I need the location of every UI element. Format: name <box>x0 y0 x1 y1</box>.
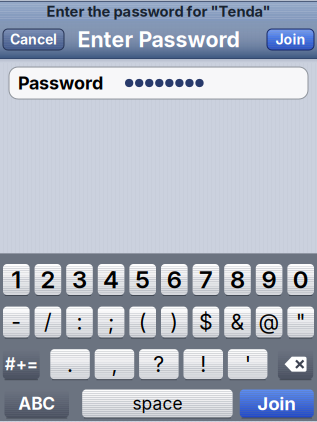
staticText: 4 <box>103 265 119 294</box>
button[interactable]: ? <box>139 349 179 380</box>
staticText: 0 <box>293 265 309 294</box>
staticText: 6 <box>167 265 182 294</box>
button[interactable]: $ <box>193 307 219 339</box>
staticText: 3 <box>72 265 87 294</box>
button[interactable]: ' <box>228 349 267 380</box>
button[interactable]: 2 <box>35 264 61 296</box>
button[interactable]: Password <box>9 67 308 99</box>
button[interactable]: Cancel <box>3 29 64 50</box>
button[interactable]: 5 <box>129 264 156 296</box>
button[interactable]: , <box>95 349 134 380</box>
staticText: ; <box>108 309 114 335</box>
button[interactable]: ! <box>183 349 223 380</box>
staticText: ABC <box>18 393 55 414</box>
staticText: @ <box>259 309 280 335</box>
staticText: " <box>296 309 306 335</box>
staticText: ' <box>245 351 251 377</box>
staticText: space <box>132 393 182 414</box>
button[interactable]: - <box>3 307 30 339</box>
staticText: Join <box>275 31 305 48</box>
staticText: / <box>44 309 52 335</box>
staticText: 2 <box>40 265 55 294</box>
button[interactable]: : <box>66 307 93 339</box>
staticText: Cancel <box>10 31 57 48</box>
button[interactable]: space <box>82 389 233 418</box>
staticText: 1 <box>11 265 21 294</box>
staticText: Enter the password for "Tenda" <box>46 3 270 20</box>
button[interactable]: " <box>287 307 314 339</box>
button[interactable]: / <box>35 307 61 339</box>
staticText: : <box>76 309 82 335</box>
staticText: ) <box>170 309 178 335</box>
staticText: 7 <box>199 265 213 294</box>
button[interactable]: 3 <box>66 264 93 296</box>
button[interactable]: ( <box>129 307 156 339</box>
staticText: 5 <box>135 265 150 294</box>
button[interactable]: 6 <box>161 264 188 296</box>
button[interactable]: ABC <box>4 389 69 418</box>
staticText: Password <box>18 72 103 94</box>
button[interactable]: 0 <box>287 264 314 296</box>
staticText: #+= <box>5 354 38 374</box>
button[interactable]: Join <box>267 29 314 50</box>
staticText: , <box>111 351 117 377</box>
staticText: 9 <box>262 265 277 294</box>
button[interactable]: #+= <box>3 349 40 380</box>
staticText: & <box>230 309 244 335</box>
button[interactable]: 9 <box>256 264 282 296</box>
staticText: - <box>11 309 21 335</box>
button[interactable]: 7 <box>193 264 219 296</box>
button[interactable]: ; <box>98 307 124 339</box>
staticText: . <box>67 351 73 377</box>
staticText: ? <box>153 351 164 377</box>
button[interactable]: ) <box>161 307 188 339</box>
button[interactable]: 1 <box>3 264 30 296</box>
button[interactable]: Delete <box>278 349 313 380</box>
staticText: 8 <box>230 265 245 294</box>
button[interactable]: . <box>50 349 90 380</box>
button[interactable]: 4 <box>98 264 124 296</box>
staticText: $ <box>199 309 213 335</box>
staticText: ( <box>139 309 147 335</box>
button[interactable]: & <box>224 307 251 339</box>
button[interactable]: 8 <box>224 264 251 296</box>
button[interactable]: @ <box>256 307 282 339</box>
button[interactable]: Join <box>240 389 314 418</box>
staticText: Join <box>257 392 296 415</box>
staticText: Enter Password <box>77 27 239 52</box>
staticText: ! <box>200 351 206 377</box>
